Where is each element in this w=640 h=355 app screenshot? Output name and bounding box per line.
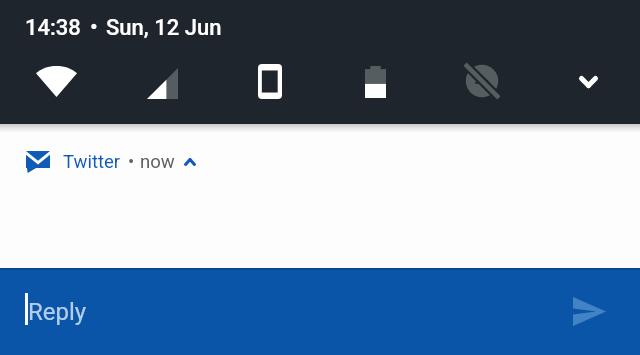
staticText: now (140, 151, 175, 173)
staticText: Twitter (63, 151, 121, 173)
button[interactable]: Reply text field (0, 268, 552, 355)
staticText: 14:38 (25, 15, 81, 41)
button[interactable]: Send (560, 282, 618, 340)
button[interactable]: Battery saver (322, 50, 429, 106)
button[interactable]: Mobile data (109, 50, 216, 106)
staticText: Sun, 12 Jun (106, 15, 222, 41)
staticText: • (90, 15, 98, 41)
button[interactable]: Wi-Fi (3, 50, 110, 106)
staticText: Reply (28, 298, 87, 326)
staticText: • (128, 151, 135, 173)
button[interactable]: Do not disturb (428, 50, 535, 106)
button[interactable]: Expand quick settings (535, 50, 640, 106)
button[interactable]: Auto-rotate (216, 50, 323, 106)
button[interactable]: Twitter (0, 143, 640, 181)
